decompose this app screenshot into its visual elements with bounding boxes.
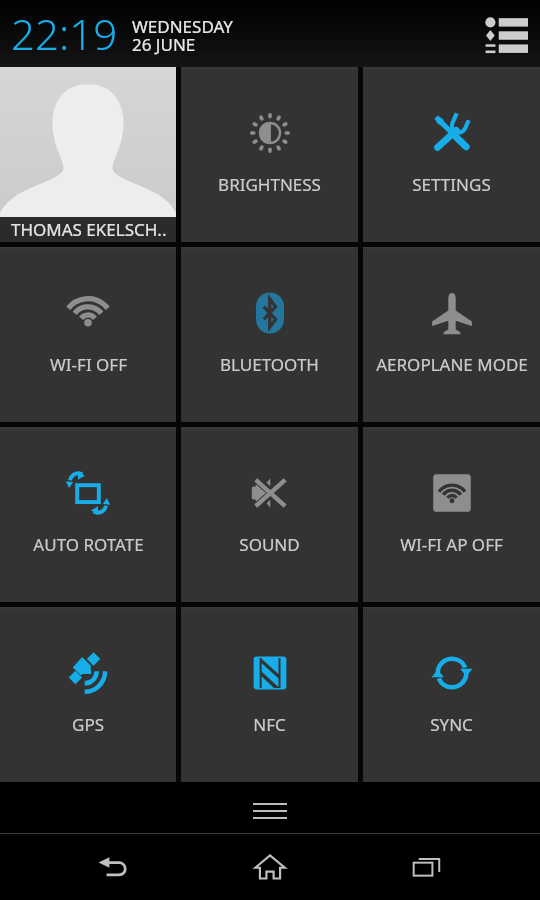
button[interactable]: Home (191, 834, 348, 900)
staticText: WEDNESDAY (132, 15, 233, 38)
button[interactable]: Collapse panel (0, 782, 540, 833)
button[interactable]: WI-FI OFF (0, 247, 176, 422)
staticText: SYNC (430, 713, 473, 736)
button[interactable]: THOMAS EKELSCH.. (0, 67, 176, 242)
staticText: WI-FI AP OFF (400, 533, 503, 556)
staticText: WI-FI OFF (50, 353, 127, 376)
staticText: 22:19 (11, 5, 118, 62)
staticText: SETTINGS (412, 173, 491, 196)
button[interactable]: BRIGHTNESS (181, 67, 358, 242)
staticText: AEROPLANE MODE (376, 353, 528, 376)
button[interactable]: NFC (181, 607, 358, 782)
button[interactable]: Notifications (480, 8, 532, 60)
staticText: BLUETOOTH (220, 353, 319, 376)
button[interactable]: AEROPLANE MODE (363, 247, 540, 422)
staticText: BRIGHTNESS (218, 173, 321, 196)
staticText: GPS (72, 713, 104, 736)
staticText: NFC (253, 713, 286, 736)
button[interactable]: BLUETOOTH (181, 247, 358, 422)
button[interactable]: Back (34, 834, 191, 900)
staticText: SOUND (239, 533, 300, 556)
staticText: THOMAS EKELSCH.. (11, 218, 167, 241)
button[interactable]: SYNC (363, 607, 540, 782)
button[interactable]: SOUND (181, 427, 358, 602)
staticText: 26 JUNE (132, 33, 196, 56)
button[interactable]: SETTINGS (363, 67, 540, 242)
staticText: AUTO ROTATE (33, 533, 144, 556)
button[interactable]: GPS (0, 607, 176, 782)
button[interactable]: Recent apps (348, 834, 505, 900)
button[interactable]: WI-FI AP OFF (363, 427, 540, 602)
button[interactable]: AUTO ROTATE (0, 427, 176, 602)
